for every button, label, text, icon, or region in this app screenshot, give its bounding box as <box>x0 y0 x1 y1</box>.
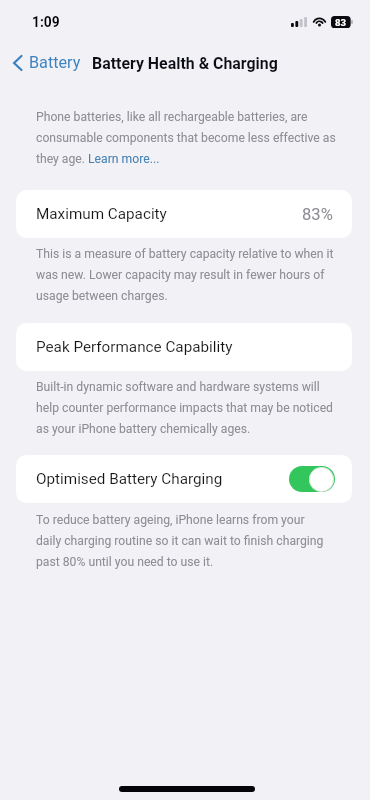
staticText: 1:09 <box>32 14 60 30</box>
button[interactable]: Optimised Battery Charging, on <box>289 466 335 492</box>
staticText: To reduce battery ageing, iPhone learns … <box>36 513 331 569</box>
staticText: Built-in dynamic software and hardware s… <box>36 380 336 436</box>
button[interactable]: Battery <box>7 49 87 76</box>
staticText: Optimised Battery Charging <box>36 470 223 488</box>
staticText: This is a measure of battery capacity re… <box>36 247 336 303</box>
staticText: Maximum Capacity <box>36 205 167 223</box>
staticText: Peak Performance Capability <box>36 338 233 356</box>
staticText: Phone batteries, like all rechargeable b… <box>36 110 336 166</box>
button[interactable]: Maximum Capacity <box>16 190 352 238</box>
staticText: Battery Health & Charging <box>92 54 278 73</box>
staticText: Battery <box>29 53 81 72</box>
staticText: 83% <box>302 205 333 224</box>
button[interactable]: Peak Performance Capability <box>16 323 352 371</box>
staticText: 83 <box>335 17 347 28</box>
